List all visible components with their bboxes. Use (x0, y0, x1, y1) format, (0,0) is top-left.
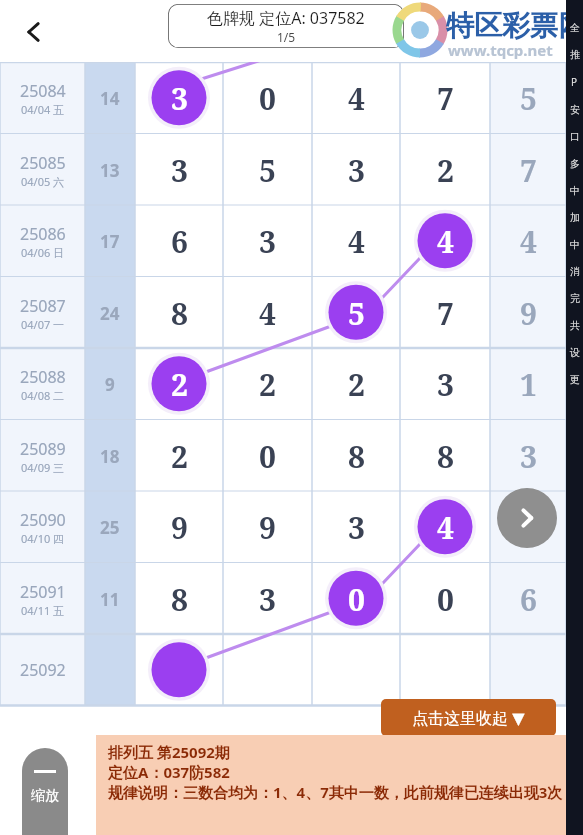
staticText: 2 (171, 364, 188, 405)
button[interactable]: 3 (400, 348, 490, 420)
button[interactable] (135, 634, 223, 706)
button[interactable]: 9 (223, 491, 312, 563)
button[interactable]: 排列五 第25092期 (96, 735, 583, 835)
staticText: 9 (171, 507, 188, 548)
staticText: 11 (100, 588, 120, 611)
button[interactable]: 3 (312, 491, 400, 563)
staticText: 0 (348, 579, 365, 620)
button[interactable]: 25092 (0, 634, 85, 706)
button[interactable]: 25088 (0, 348, 85, 420)
button[interactable]: 8 (400, 420, 490, 492)
staticText: 更 (570, 373, 580, 386)
staticText: 4 (520, 221, 537, 262)
button[interactable]: 5 (223, 134, 312, 206)
button[interactable] (400, 634, 490, 706)
staticText: 25084 (20, 80, 66, 102)
staticText: 设 (570, 346, 580, 359)
staticText: 点击这里收起 ▼ (412, 707, 525, 729)
button[interactable]: 0 (312, 563, 400, 635)
button[interactable]: 5 (312, 277, 400, 349)
button[interactable]: Next (497, 488, 557, 548)
button[interactable]: 7 (400, 277, 490, 349)
staticText: 多 (570, 157, 580, 170)
button[interactable]: 色牌规 定位A: 037582 (168, 4, 404, 48)
button[interactable]: 25087 (0, 277, 85, 349)
staticText: 14 (100, 87, 120, 110)
staticText: 17 (100, 230, 120, 253)
button[interactable]: 8 (135, 277, 223, 349)
staticText: 缩放 (31, 787, 59, 805)
staticText: 18 (100, 445, 120, 468)
staticText: 3 (171, 78, 188, 119)
staticText: 25087 (20, 295, 66, 317)
button[interactable]: 9 (135, 491, 223, 563)
staticText: 7 (437, 293, 454, 334)
staticText: 3 (171, 150, 188, 191)
button[interactable] (490, 634, 566, 706)
staticText: 5 (259, 150, 276, 191)
staticText: 7 (437, 78, 454, 119)
button[interactable]: 25086 (0, 205, 85, 277)
staticText: 3 (259, 221, 276, 262)
staticText: 安 (570, 103, 580, 116)
button[interactable]: 4 (223, 277, 312, 349)
button[interactable]: 6 (490, 563, 566, 635)
button[interactable]: 4 (490, 205, 566, 277)
button[interactable]: 2 (135, 420, 223, 492)
button[interactable]: 25089 (0, 420, 85, 492)
button[interactable]: 0 (400, 563, 490, 635)
button[interactable]: Back (8, 6, 60, 58)
button[interactable]: 4 (400, 491, 490, 563)
button[interactable]: 25091 (0, 563, 85, 635)
button[interactable]: 25085 (0, 134, 85, 206)
staticText: 0 (437, 579, 454, 620)
button[interactable]: 缩放 (22, 748, 68, 835)
button[interactable]: 3 (223, 205, 312, 277)
staticText: 2 (437, 150, 454, 191)
button[interactable]: 0 (223, 420, 312, 492)
button[interactable]: 2 (223, 348, 312, 420)
button[interactable]: 5 (490, 62, 566, 134)
button[interactable]: 2 (400, 134, 490, 206)
button[interactable]: 8 (312, 420, 400, 492)
button[interactable]: 3 (135, 62, 223, 134)
staticText: 25 (100, 516, 120, 539)
staticText: 加 (570, 211, 580, 224)
button[interactable]: 25084 (0, 62, 85, 134)
staticText: 消 (570, 265, 580, 278)
button[interactable]: 2 (312, 348, 400, 420)
button[interactable]: 8 (135, 563, 223, 635)
button[interactable]: 3 (223, 563, 312, 635)
staticText: 04/06 日 (21, 245, 65, 260)
staticText: 排列五 第25092期 (108, 742, 230, 762)
button[interactable]: 0 (223, 62, 312, 134)
staticText: 3 (259, 579, 276, 620)
staticText: 25090 (20, 509, 66, 531)
button[interactable]: 3 (312, 134, 400, 206)
staticText: 8 (348, 436, 365, 477)
staticText: 9 (259, 507, 276, 548)
staticText: 4 (259, 293, 276, 334)
staticText: 6 (520, 579, 537, 620)
button[interactable]: 7 (400, 62, 490, 134)
button[interactable] (223, 634, 312, 706)
staticText: 04/04 五 (21, 102, 65, 117)
staticText: 定位A：037防582 (108, 762, 230, 782)
button[interactable]: 4 (312, 205, 400, 277)
button[interactable]: 6 (135, 205, 223, 277)
staticText: 04/05 六 (21, 174, 65, 189)
button[interactable]: 点击这里收起 ▼ (381, 699, 556, 736)
button[interactable]: 3 (490, 420, 566, 492)
button[interactable]: 3 (135, 134, 223, 206)
button[interactable]: 4 (312, 62, 400, 134)
button[interactable]: 5 (490, 491, 566, 563)
button[interactable]: 9 (490, 277, 566, 349)
button[interactable]: 7 (490, 134, 566, 206)
button[interactable]: 25090 (0, 491, 85, 563)
staticText: www.tqcp.net (448, 40, 553, 60)
button[interactable]: 2 (135, 348, 223, 420)
button[interactable] (312, 634, 400, 706)
staticText: 完 (570, 292, 580, 305)
button[interactable]: 4 (400, 205, 490, 277)
button[interactable]: 1 (490, 348, 566, 420)
